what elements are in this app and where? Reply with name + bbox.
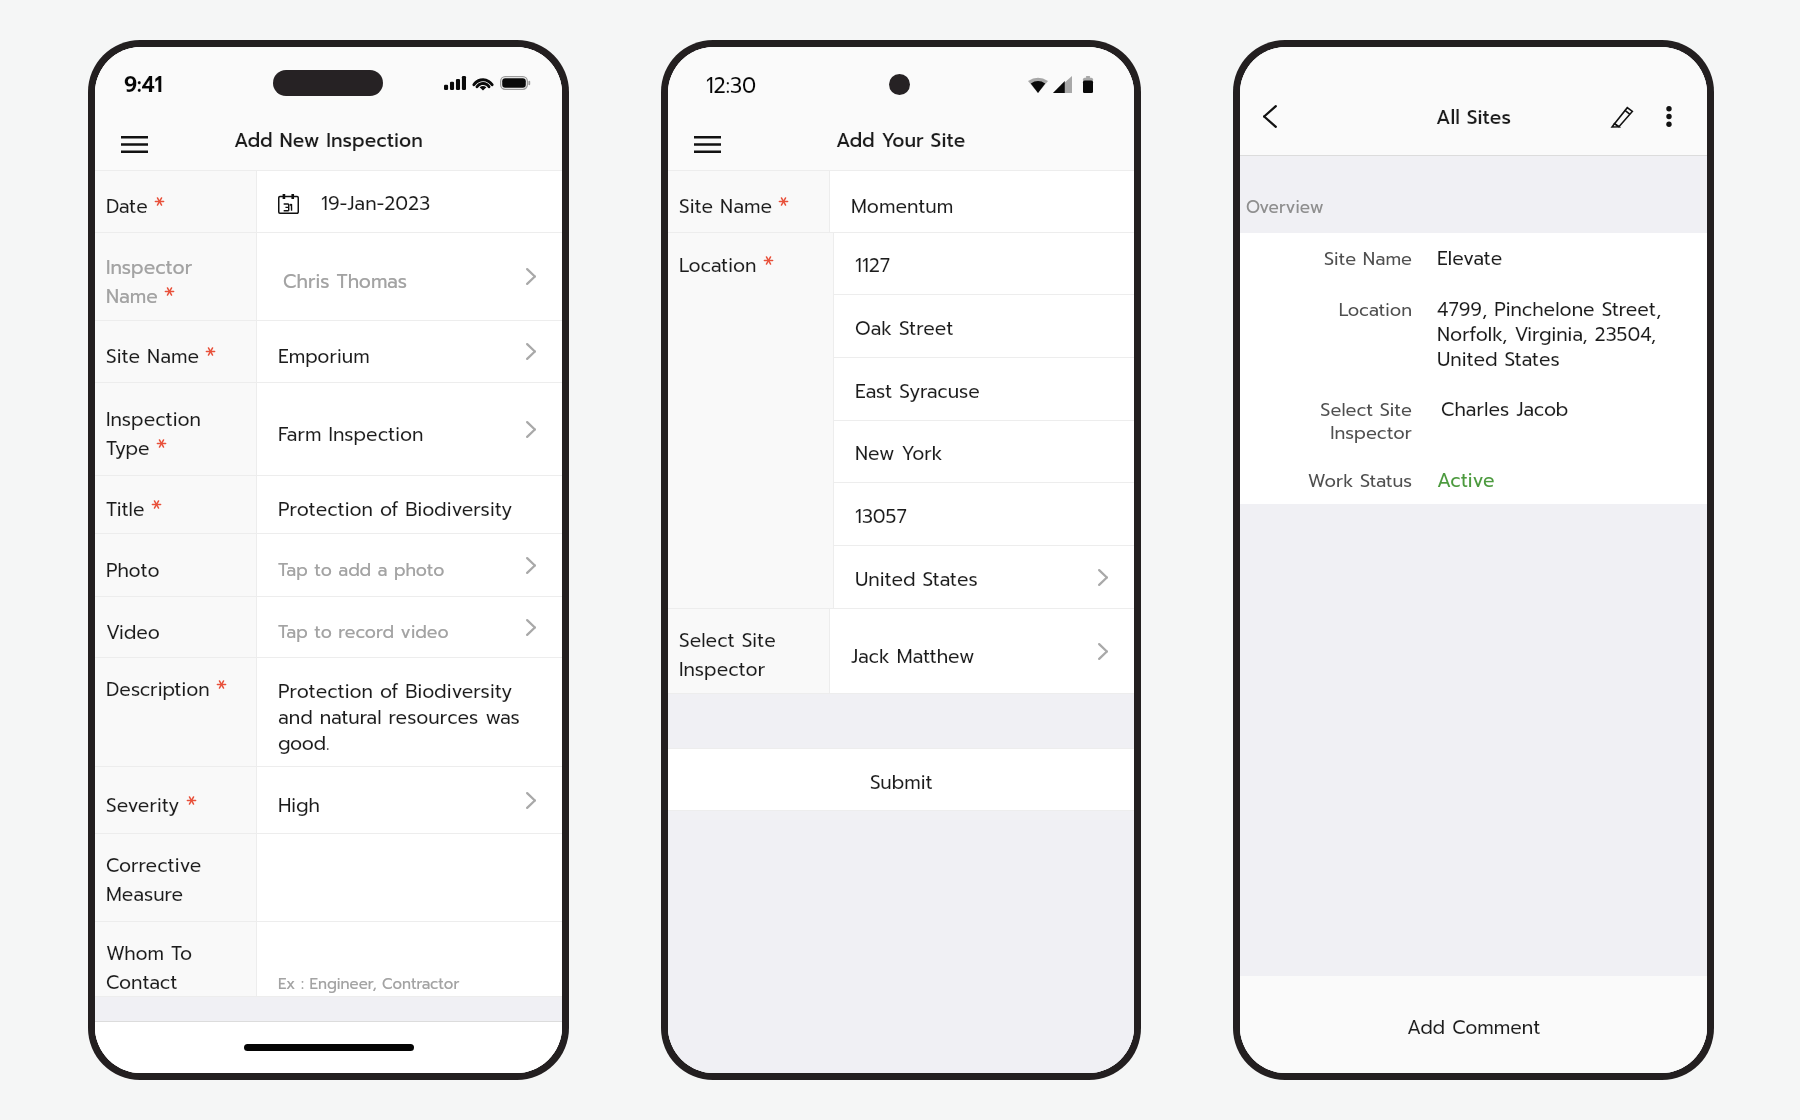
staticText: Select Site Inspector [1320, 396, 1412, 446]
staticText: 4799, Pinchelone Street, Norfolk, Virgin… [1437, 295, 1662, 374]
staticText: Farm Inspection [278, 420, 424, 449]
button[interactable]: New York [834, 421, 1134, 482]
staticText: Charles Jacob [1441, 395, 1569, 424]
staticText: Name [106, 282, 158, 311]
staticText: Oak Street [855, 314, 954, 343]
staticText: Emporium [278, 342, 370, 371]
staticText: Video [106, 618, 160, 647]
staticText: Add Your Site [836, 126, 966, 155]
staticText: Site Name [106, 342, 199, 371]
staticText: Submit [870, 768, 933, 797]
staticText: East Syracuse [855, 377, 980, 406]
staticText: Select Site [679, 626, 776, 655]
staticText: Corrective [106, 851, 202, 880]
staticText: Tap to record video [278, 619, 449, 645]
button[interactable]: Select Site [668, 609, 1134, 693]
staticText: Site Name [1323, 245, 1412, 272]
staticText: Inspection [106, 405, 201, 434]
staticText: Add New Inspection [234, 126, 423, 155]
staticText: Site Name [679, 192, 772, 221]
button[interactable]: 1127 [834, 233, 1134, 294]
staticText: Ex : Engineer, Contractor [278, 973, 460, 996]
staticText: Contact [106, 968, 178, 996]
staticText: Elevate [1437, 244, 1503, 273]
staticText: Photo [106, 556, 160, 585]
staticText: Location [1338, 296, 1412, 323]
button[interactable]: Oak Street [834, 295, 1134, 357]
staticText: 9:41 [124, 69, 163, 101]
staticText: Title [106, 495, 145, 524]
button[interactable]: Inspector [95, 233, 562, 320]
button[interactable]: 13057 [834, 483, 1134, 545]
button[interactable]: Menu [685, 122, 729, 166]
staticText: 19-Jan-2023 [321, 189, 431, 218]
button[interactable]: Title [95, 476, 562, 533]
staticText: Type [106, 434, 150, 463]
staticText: Whom To [106, 939, 193, 968]
button[interactable]: Whom To [95, 922, 562, 996]
staticText: Severity [106, 791, 180, 820]
staticText: 12:30 [706, 70, 757, 102]
staticText: Overview [1246, 194, 1324, 220]
staticText: Protection of Biodiversity and natural r… [278, 677, 520, 758]
staticText: Chris Thomas [283, 267, 407, 296]
staticText: Measure [106, 880, 184, 909]
staticText: Add Comment [1407, 1013, 1541, 1042]
staticText: Date [106, 192, 148, 221]
button[interactable]: Corrective [95, 834, 562, 921]
button[interactable]: East Syracuse [834, 358, 1134, 420]
staticText: Work Status [1307, 467, 1412, 494]
staticText: Active [1437, 466, 1495, 495]
staticText: New York [855, 439, 943, 468]
button[interactable]: Menu [112, 122, 156, 166]
button[interactable]: Site Name [668, 171, 1134, 232]
staticText: Momentum [851, 192, 954, 221]
staticText: High [278, 791, 320, 820]
button[interactable]: United States [834, 546, 1134, 608]
button[interactable]: Add Comment [1240, 976, 1707, 1073]
button[interactable]: Edit [1601, 95, 1643, 137]
button[interactable]: Back [1249, 95, 1291, 137]
button[interactable]: Inspection [95, 383, 562, 475]
button[interactable]: Description [95, 658, 562, 766]
staticText: United States [855, 565, 978, 594]
staticText: Inspector [679, 655, 766, 684]
staticText: Tap to add a photo [278, 557, 445, 583]
staticText: 1127 [855, 251, 891, 280]
staticText: Inspector [106, 253, 193, 282]
staticText: 13057 [855, 502, 907, 531]
button[interactable]: Severity [95, 767, 562, 833]
button[interactable]: More options [1648, 95, 1690, 137]
button[interactable]: Date [95, 171, 562, 232]
staticText: Protection of Biodiversity [278, 495, 513, 524]
button[interactable]: Video [95, 597, 562, 657]
staticText: Location [679, 251, 757, 280]
button[interactable]: Site Name [95, 321, 562, 382]
button[interactable]: Photo [95, 534, 562, 596]
staticText: Jack Matthew [851, 642, 975, 671]
button[interactable]: Submit [668, 749, 1134, 810]
staticText: All Sites [1436, 103, 1511, 132]
staticText: Description [106, 675, 210, 704]
